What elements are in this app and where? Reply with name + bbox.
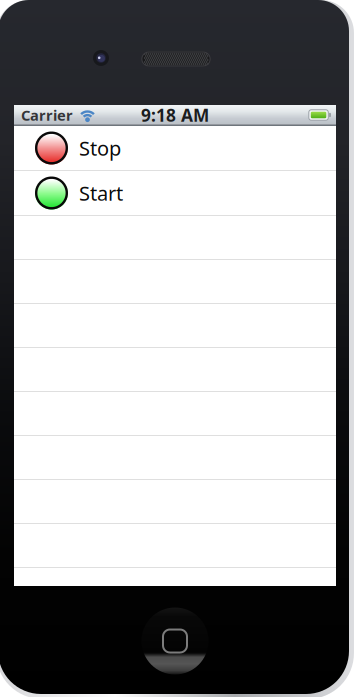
staticText: Stop (79, 135, 121, 161)
staticText: Start (79, 180, 123, 206)
staticText: Carrier (21, 105, 73, 125)
button[interactable]: Start (14, 171, 336, 215)
staticText: 9:18 AM (141, 103, 209, 126)
button[interactable]: Home (141, 607, 209, 675)
button[interactable]: Stop (14, 126, 336, 170)
